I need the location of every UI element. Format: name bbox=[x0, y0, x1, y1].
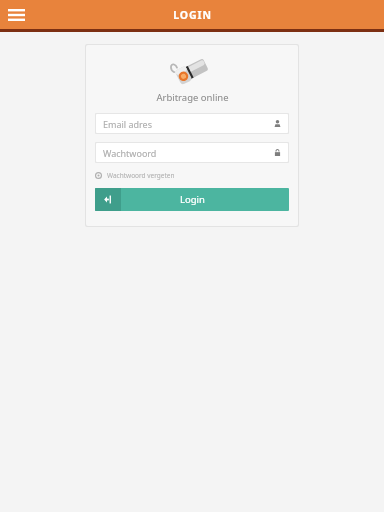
button[interactable]: Open navigation menu bbox=[0, 0, 32, 29]
staticText: Login bbox=[180, 193, 205, 206]
staticText: LOGIN bbox=[173, 8, 212, 22]
button[interactable]: Email adres bbox=[96, 114, 288, 133]
staticText: Wachtwoord vergeten bbox=[107, 171, 175, 180]
staticText: Email adres bbox=[103, 118, 274, 130]
button[interactable]: Login bbox=[95, 188, 289, 211]
staticText: Arbitrage online bbox=[156, 91, 229, 104]
button[interactable]: Wachtwoord vergeten bbox=[95, 171, 289, 180]
button[interactable]: Wachtwoord bbox=[96, 143, 288, 162]
staticText: Wachtwoord bbox=[103, 147, 274, 159]
